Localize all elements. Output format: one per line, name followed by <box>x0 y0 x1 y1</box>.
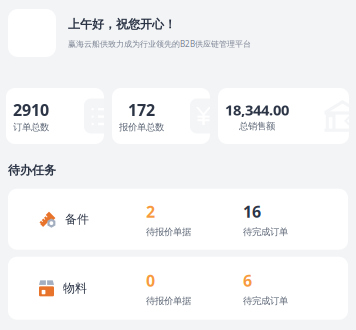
staticText: 18,344.00 <box>225 100 289 119</box>
staticText: 172 <box>128 99 155 120</box>
staticText: 待办任务 <box>8 163 56 178</box>
button[interactable]: 172 <box>112 88 210 144</box>
button[interactable]: 2910 <box>6 88 104 144</box>
staticText: 16 <box>243 201 261 222</box>
button[interactable]: 物料 <box>8 257 348 320</box>
staticText: 订单总数 <box>13 121 49 133</box>
staticText: 6 <box>243 270 252 291</box>
staticText: 待报价单据 <box>146 226 191 238</box>
staticText: 物料 <box>63 281 87 296</box>
staticText: 备件 <box>65 212 89 227</box>
staticText: 0 <box>146 270 155 291</box>
staticText: 赢海云船供致力成为行业领先的B2B供应链管理平台 <box>68 39 251 49</box>
staticText: 待报价单据 <box>146 295 191 307</box>
staticText: 待完成订单 <box>243 295 288 307</box>
button[interactable]: 18,344.00 <box>218 88 349 144</box>
staticText: 2910 <box>13 99 49 120</box>
staticText: 上午好，祝您开心！ <box>68 17 176 31</box>
button[interactable]: 备件 <box>8 189 348 250</box>
staticText: 报价单总数 <box>119 121 164 133</box>
staticText: 待完成订单 <box>243 226 288 238</box>
staticText: 2 <box>146 201 155 222</box>
staticText: 总销售额 <box>239 120 275 132</box>
